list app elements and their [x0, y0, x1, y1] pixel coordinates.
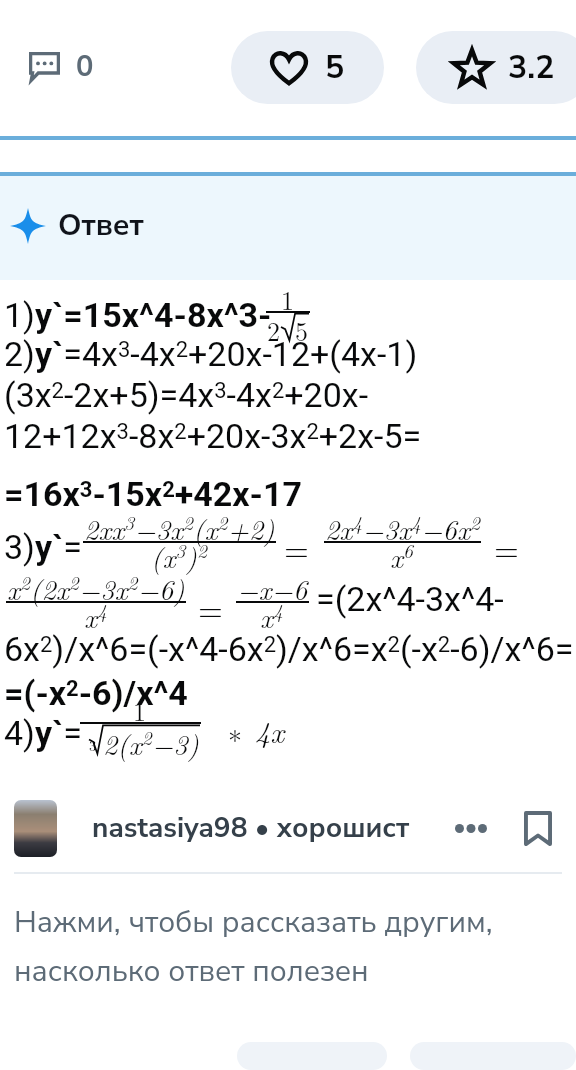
- staticText: =: [284, 525, 309, 570]
- staticText: 6x2)/x^6=(-x^4-6x2)/x^6=x2(-x2-6)/x^6=: [4, 629, 574, 669]
- staticText: 1: [281, 281, 295, 318]
- staticText: −x−6: [237, 568, 308, 608]
- staticText: x6: [390, 536, 414, 576]
- staticText: x2(2x2−3x2−6): [7, 568, 185, 608]
- staticText: (x3)2: [151, 536, 207, 576]
- staticText: 2xx3−3x2(x2+2): [84, 508, 275, 548]
- button[interactable]: More options: [444, 801, 498, 855]
- staticText: 5: [325, 46, 345, 90]
- staticText: 4)y`=: [4, 713, 82, 753]
- staticText: 3.2: [508, 46, 555, 90]
- staticText: 12+12x3-8x2+20x-3x2+2x-5=: [4, 416, 422, 456]
- staticText: =: [494, 525, 519, 570]
- staticText: 4x: [255, 709, 285, 751]
- staticText: 3: [89, 735, 97, 756]
- staticText: Нажми, чтобы рассказать другим, наскольк…: [14, 902, 493, 991]
- staticText: 1: [133, 692, 147, 729]
- staticText: =16x3-15x2+42x-17: [4, 474, 303, 514]
- other: Comments: [29, 52, 60, 82]
- staticText: 2: [267, 312, 281, 349]
- staticText: 0: [76, 47, 94, 87]
- staticText: =(-x2-6)/x^4: [4, 673, 188, 713]
- button[interactable]: [237, 1042, 387, 1070]
- button[interactable]: Comments: [20, 37, 103, 97]
- staticText: 3)y`=: [4, 527, 82, 567]
- staticText: 2x4−3x4−6x2: [325, 508, 480, 548]
- staticText: 2)y`=4x3-4x2+20x-12+(4x-1): [4, 334, 418, 374]
- staticText: (3x2-2x+5)=4x3-4x2+20x-: [4, 375, 369, 415]
- staticText: Ответ: [58, 205, 144, 246]
- staticText: ∗: [228, 711, 243, 751]
- button[interactable]: 5: [231, 31, 384, 104]
- staticText: =: [198, 585, 223, 630]
- button[interactable]: Bookmark: [514, 804, 562, 852]
- staticText: =(2x^4-3x^4-: [316, 579, 504, 619]
- staticText: x4: [260, 596, 284, 636]
- staticText: 5: [295, 312, 309, 349]
- staticText: 1)y`=15x^4-8x^3-: [4, 295, 272, 335]
- staticText: 2(x2−3): [103, 723, 200, 763]
- staticText: nastasiya98 • хорошист: [92, 809, 410, 847]
- button[interactable]: 3.2: [416, 31, 576, 104]
- staticText: x4: [84, 596, 108, 636]
